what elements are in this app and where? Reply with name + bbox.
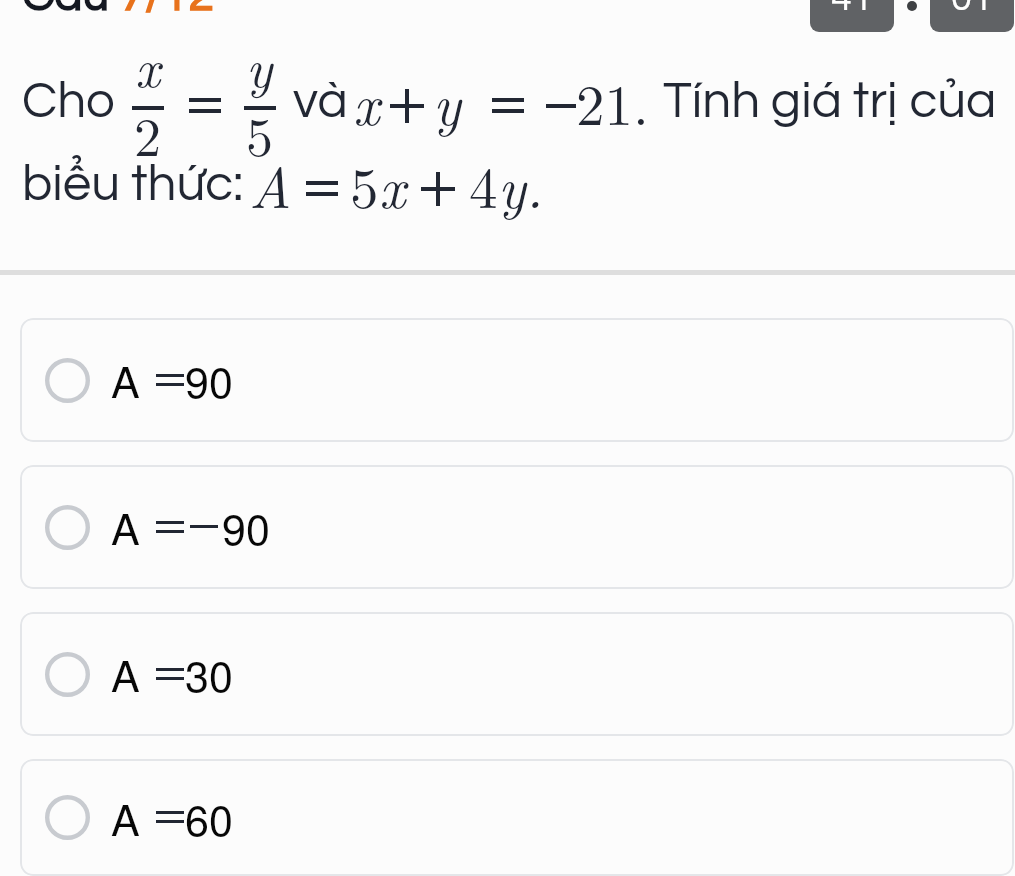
staticText: 90 (222, 496, 270, 558)
button[interactable]: A (20, 612, 1014, 736)
button[interactable]: A (20, 318, 1014, 442)
staticText: biểu thức: (22, 158, 244, 211)
staticText: 41 (831, 0, 873, 18)
staticText: A (111, 787, 140, 849)
staticText: và (293, 75, 348, 128)
staticText: 30 (185, 643, 233, 705)
other: Remaining time 01 (951, 0, 993, 18)
staticText: 21. (576, 61, 649, 142)
staticText: 60 (185, 787, 233, 849)
staticText: 4 (469, 144, 498, 225)
staticText: y (246, 26, 273, 102)
staticText: A (111, 496, 140, 558)
staticText: x (379, 144, 406, 225)
staticText: A (249, 144, 292, 225)
staticText: 5 (350, 144, 379, 225)
staticText: Câu 7/12 (22, 0, 214, 19)
other: Remaining time 41 (831, 0, 873, 18)
staticText: x (353, 61, 380, 142)
staticText: 5 (246, 95, 273, 172)
staticText: y (433, 61, 461, 142)
staticText: A (111, 643, 140, 705)
button[interactable]: A (20, 759, 1014, 876)
staticText: 01 (951, 0, 993, 18)
staticText: Tính giá trị của (663, 75, 997, 128)
button[interactable]: A (20, 465, 1014, 589)
staticText: 2 (134, 95, 161, 172)
staticText: A (111, 349, 140, 411)
staticText: x (135, 26, 161, 102)
staticText: Cho (22, 75, 115, 128)
staticText: y. (498, 144, 544, 225)
staticText: 90 (185, 349, 233, 411)
